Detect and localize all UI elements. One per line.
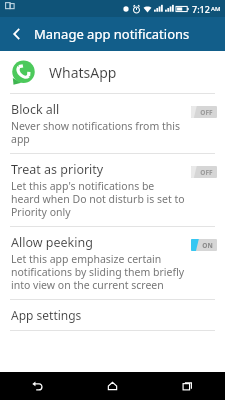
staticText: App settings (11, 307, 82, 323)
staticText: Let this app emphasize certain notificat… (11, 252, 185, 292)
staticText: Allow peeking (11, 234, 93, 251)
button[interactable]: Off (191, 166, 217, 178)
staticText: Treat as priority (11, 161, 104, 178)
staticText: Let this app's notifications be heard wh… (11, 179, 185, 219)
staticText: Never show notifications from this app (11, 119, 185, 146)
staticText: OFF (200, 108, 213, 117)
button[interactable]: WhatsApp (0, 51, 225, 93)
button[interactable]: Off (191, 106, 217, 118)
button[interactable]: On (191, 239, 217, 251)
staticText: 7:12 (192, 3, 210, 15)
staticText: WhatsApp (49, 63, 117, 82)
button[interactable]: App settings (0, 300, 225, 330)
button[interactable]: Back (0, 372, 75, 400)
button[interactable]: Allow peeking (0, 227, 225, 299)
staticText: Block all (11, 101, 60, 118)
staticText: ON (202, 241, 213, 250)
staticText: AM (211, 5, 221, 13)
staticText: Manage app notifications (34, 25, 190, 43)
button[interactable]: Back (0, 17, 34, 51)
button[interactable]: Block all (0, 94, 225, 153)
button[interactable]: Treat as priority (0, 154, 225, 226)
button[interactable]: Home (75, 372, 150, 400)
staticText: OFF (200, 168, 213, 177)
button[interactable]: Recent apps (150, 372, 225, 400)
